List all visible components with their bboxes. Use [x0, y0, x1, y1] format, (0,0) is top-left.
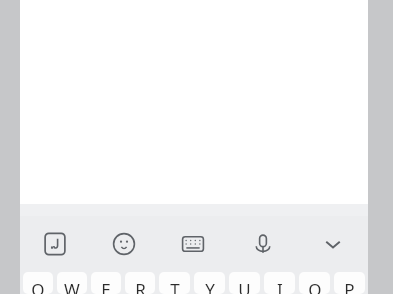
button[interactable]: R: [125, 272, 155, 294]
button[interactable]: Hide keyboard: [298, 216, 368, 272]
button[interactable]: O: [299, 272, 330, 294]
button[interactable]: Handwriting input: [20, 216, 89, 272]
staticText: Q: [31, 278, 45, 294]
staticText: O: [308, 278, 322, 294]
staticText: Y: [205, 278, 215, 294]
staticText: R: [135, 278, 146, 294]
staticText: T: [170, 278, 180, 294]
button[interactable]: Keyboard: [158, 216, 228, 272]
button[interactable]: Voice input: [228, 216, 298, 272]
button[interactable]: Y: [194, 272, 225, 294]
button[interactable]: E: [91, 272, 121, 294]
staticText: P: [344, 278, 355, 294]
staticText: U: [238, 278, 251, 294]
button[interactable]: T: [159, 272, 190, 294]
button[interactable]: Q: [23, 272, 53, 294]
button[interactable]: W: [57, 272, 87, 294]
button[interactable]: P: [334, 272, 365, 294]
button[interactable]: U: [229, 272, 260, 294]
button[interactable]: I: [264, 272, 295, 294]
staticText: W: [64, 278, 80, 294]
staticText: E: [101, 278, 111, 294]
button[interactable]: Emoji: [89, 216, 158, 272]
staticText: I: [277, 278, 283, 294]
